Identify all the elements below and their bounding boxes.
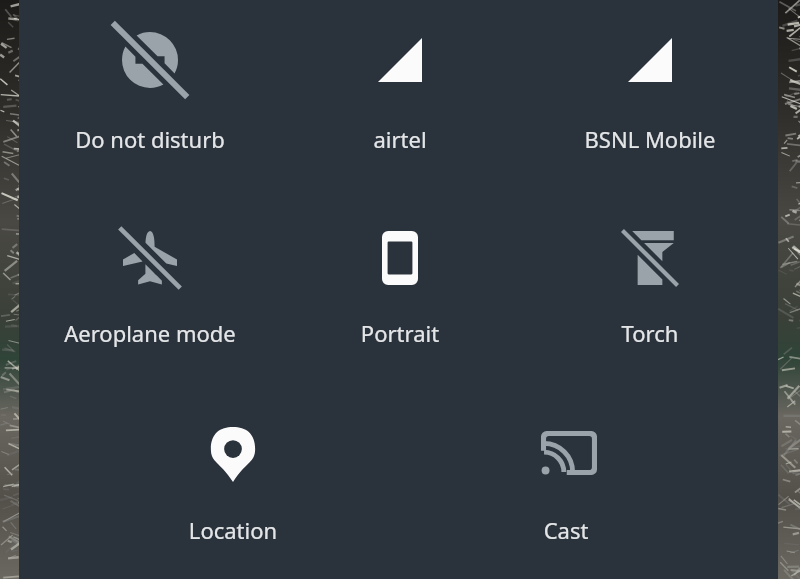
button[interactable]: Aeroplane mode <box>25 200 275 350</box>
button[interactable]: BSNL Mobile <box>525 2 775 152</box>
staticText: Do not disturb <box>25 124 275 154</box>
button[interactable]: Do not disturb <box>25 2 275 152</box>
button[interactable]: Cast <box>441 397 691 547</box>
staticText: Location <box>108 515 358 545</box>
button[interactable]: airtel <box>275 2 525 152</box>
staticText: Cast <box>441 515 691 545</box>
staticText: Torch <box>525 318 775 348</box>
button[interactable]: Location <box>108 397 358 547</box>
button[interactable]: Portrait <box>275 200 525 350</box>
staticText: BSNL Mobile <box>525 124 775 154</box>
staticText: Aeroplane mode <box>25 318 275 348</box>
staticText: airtel <box>275 124 525 154</box>
staticText: Portrait <box>275 318 525 348</box>
button[interactable]: Torch <box>525 200 775 350</box>
